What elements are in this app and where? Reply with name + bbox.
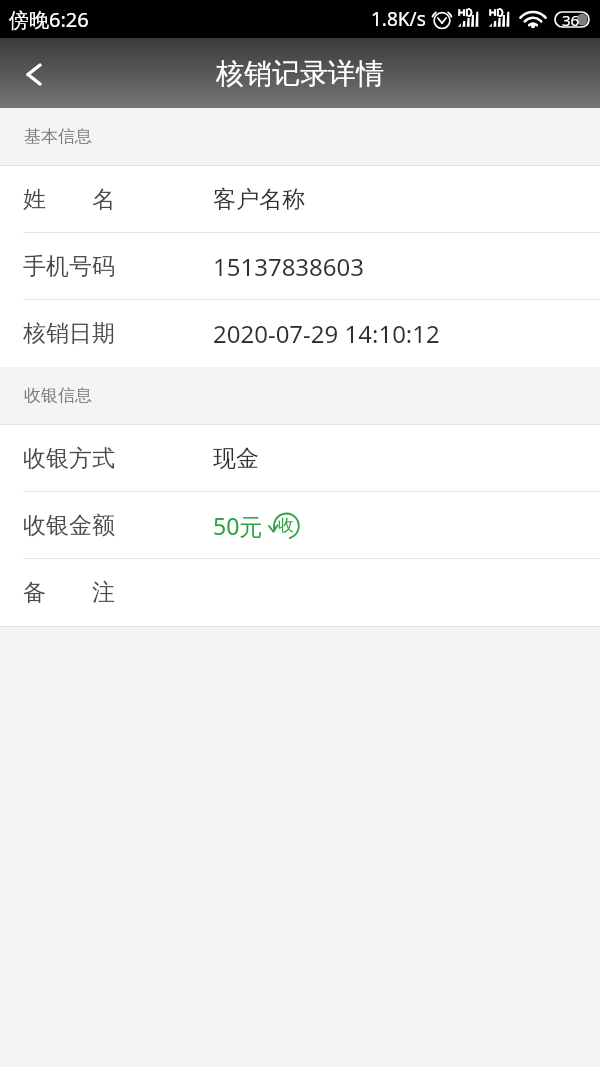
staticText: 1.8K/s	[371, 6, 426, 32]
staticText: 收银方式	[23, 444, 115, 473]
staticText: 客户名称	[213, 185, 305, 214]
staticText: 名	[92, 185, 115, 214]
staticText: 50元	[213, 510, 263, 541]
staticText: 手机号码	[23, 252, 115, 281]
staticText: 15137838603	[213, 250, 365, 283]
button[interactable]: 姓	[0, 166, 600, 233]
staticText: 现金	[213, 444, 259, 473]
staticText: 姓	[23, 185, 46, 214]
staticText: 傍晚6:26	[9, 6, 89, 33]
staticText: 核销记录详情	[216, 56, 384, 91]
staticText: 2020-07-29 14:10:12	[213, 317, 440, 350]
button[interactable]: Back	[0, 39, 68, 107]
staticText: 收	[278, 516, 294, 536]
staticText: 36	[562, 10, 580, 28]
staticText: 收银金额	[23, 511, 115, 540]
other: 已收款	[269, 512, 299, 540]
staticText: 核销日期	[23, 319, 115, 348]
staticText: 注	[92, 578, 115, 607]
button[interactable]: 收银金额	[0, 492, 600, 559]
button[interactable]: 收银方式	[0, 425, 600, 492]
staticText: 备	[23, 578, 46, 607]
button[interactable]: 核销日期	[0, 300, 600, 367]
staticText: 基本信息	[24, 126, 92, 147]
button[interactable]: 备	[0, 559, 600, 626]
button[interactable]: 手机号码	[0, 233, 600, 300]
staticText: 收银信息	[24, 385, 92, 406]
